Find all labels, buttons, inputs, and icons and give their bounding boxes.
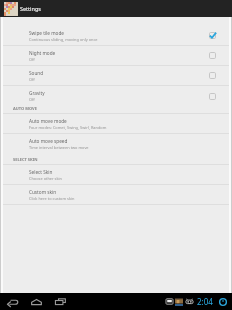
- staticText: Gravity: [29, 90, 45, 96]
- button[interactable]: Auto move speed: [3, 134, 229, 154]
- staticText: AUTO MOVE: [13, 106, 37, 111]
- button[interactable]: Sound: [3, 66, 229, 86]
- staticText: Auto move mode: [29, 118, 67, 124]
- staticText: Choose other skin: [29, 176, 62, 181]
- staticText: Off: [29, 97, 35, 102]
- staticText: Continuous sliding, moving only once: [29, 37, 98, 42]
- staticText: SELECT SKIN: [13, 157, 38, 162]
- button[interactable]: Gravity: [3, 86, 229, 106]
- staticText: Night mode: [29, 50, 56, 56]
- button[interactable]: Home: [28, 293, 45, 310]
- staticText: Sound: [29, 70, 44, 76]
- button[interactable]: Swipe tile mode: [3, 26, 229, 46]
- button[interactable]: Custom skin: [3, 185, 229, 205]
- staticText: Off: [29, 77, 35, 82]
- button[interactable]: Auto move mode: [3, 114, 229, 134]
- button[interactable]: Select Skin: [3, 165, 229, 185]
- staticText: Four modes: Comet, Swing, Swirl, Random: [29, 125, 107, 130]
- staticText: Click here to custom skin: [29, 196, 75, 201]
- button[interactable]: Recent apps: [52, 293, 69, 310]
- staticText: Auto move speed: [29, 138, 68, 144]
- staticText: Select Skin: [29, 169, 53, 175]
- staticText: Swipe tile mode: [29, 30, 64, 36]
- staticText: 2:04: [197, 296, 213, 307]
- staticText: Custom skin: [29, 189, 57, 195]
- button[interactable]: Back: [4, 293, 21, 310]
- staticText: Settings: [20, 5, 41, 12]
- staticText: Off: [29, 57, 35, 62]
- button[interactable]: Night mode: [3, 46, 229, 66]
- staticText: Time interval between two move: [29, 145, 89, 150]
